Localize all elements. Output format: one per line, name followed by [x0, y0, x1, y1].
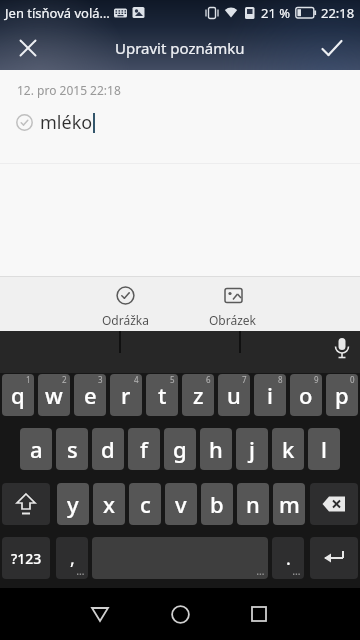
- button[interactable]: q: [2, 374, 34, 416]
- button[interactable]: w: [38, 374, 70, 416]
- button[interactable]: Obrázek: [197, 276, 269, 331]
- staticText: 5: [170, 374, 175, 385]
- staticText: 2: [62, 374, 67, 385]
- button[interactable]: d: [92, 428, 124, 470]
- staticText: Upravit poznámku: [115, 38, 245, 58]
- staticText: v: [175, 489, 187, 519]
- button[interactable]: [2, 483, 50, 525]
- button[interactable]: u: [218, 374, 250, 416]
- staticText: 3: [98, 374, 103, 385]
- button[interactable]: ?123: [2, 537, 50, 579]
- staticText: ,: [70, 546, 75, 571]
- staticText: 8: [278, 374, 283, 385]
- staticText: 1: [26, 374, 31, 385]
- staticText: x: [103, 489, 115, 519]
- staticText: 4: [134, 374, 139, 385]
- button[interactable]: z: [182, 374, 214, 416]
- button[interactable]: f: [128, 428, 160, 470]
- button[interactable]: r: [110, 374, 142, 416]
- staticText: n: [246, 489, 260, 519]
- button[interactable]: j: [236, 428, 268, 470]
- button[interactable]: t: [146, 374, 178, 416]
- staticText: j: [249, 434, 255, 464]
- button[interactable]: .: [272, 537, 304, 579]
- staticText: e: [84, 380, 97, 410]
- button[interactable]: h: [200, 428, 232, 470]
- button[interactable]: [155, 588, 205, 640]
- staticText: y: [67, 489, 79, 519]
- button[interactable]: g: [164, 428, 196, 470]
- staticText: u: [227, 380, 241, 410]
- staticText: b: [210, 489, 224, 519]
- staticText: p: [335, 380, 349, 410]
- button[interactable]: b: [201, 483, 233, 525]
- staticText: k: [282, 434, 295, 464]
- button[interactable]: mléko: [16, 110, 95, 135]
- staticText: i: [267, 380, 273, 410]
- staticText: q: [11, 380, 25, 410]
- staticText: a: [30, 434, 43, 464]
- button[interactable]: v: [165, 483, 197, 525]
- staticText: w: [45, 380, 63, 410]
- staticText: c: [140, 489, 151, 519]
- staticText: t: [158, 380, 167, 410]
- button[interactable]: o: [290, 374, 322, 416]
- button[interactable]: a: [20, 428, 52, 470]
- button[interactable]: [234, 588, 284, 640]
- staticText: 21 %: [261, 4, 291, 22]
- button[interactable]: [310, 483, 358, 525]
- staticText: Obrázek: [209, 312, 257, 328]
- staticText: z: [193, 380, 204, 410]
- staticText: ?123: [11, 549, 42, 568]
- staticText: d: [101, 434, 115, 464]
- button[interactable]: [304, 25, 360, 70]
- staticText: .: [286, 546, 291, 571]
- staticText: 7: [242, 374, 247, 385]
- button[interactable]: [0, 25, 56, 70]
- button[interactable]: c: [129, 483, 161, 525]
- staticText: s: [67, 434, 78, 464]
- button[interactable]: e: [74, 374, 106, 416]
- staticText: g: [173, 434, 187, 464]
- button[interactable]: p: [326, 374, 358, 416]
- staticText: Odrážka: [102, 312, 149, 328]
- staticText: o: [299, 380, 313, 410]
- staticText: 0: [350, 374, 355, 385]
- button[interactable]: [75, 588, 125, 640]
- staticText: f: [140, 434, 148, 464]
- button[interactable]: k: [272, 428, 304, 470]
- button[interactable]: m: [273, 483, 305, 525]
- staticText: Jen tísňová volá…: [5, 4, 110, 22]
- button[interactable]: ,: [56, 537, 88, 579]
- staticText: 9: [314, 374, 319, 385]
- button[interactable]: [310, 537, 358, 579]
- staticText: h: [209, 434, 223, 464]
- staticText: r: [121, 380, 131, 410]
- button[interactable]: Odrážka: [89, 276, 161, 331]
- button[interactable]: l: [308, 428, 340, 470]
- button[interactable]: i: [254, 374, 286, 416]
- button[interactable]: n: [237, 483, 269, 525]
- staticText: mléko: [40, 110, 93, 135]
- button[interactable]: s: [56, 428, 88, 470]
- staticText: 12. pro 2015 22:18: [17, 82, 121, 98]
- button[interactable]: y: [57, 483, 89, 525]
- staticText: 6: [206, 374, 211, 385]
- staticText: m: [279, 489, 300, 519]
- staticText: 22:18: [321, 4, 355, 22]
- staticText: l: [321, 434, 327, 464]
- button[interactable]: x: [93, 483, 125, 525]
